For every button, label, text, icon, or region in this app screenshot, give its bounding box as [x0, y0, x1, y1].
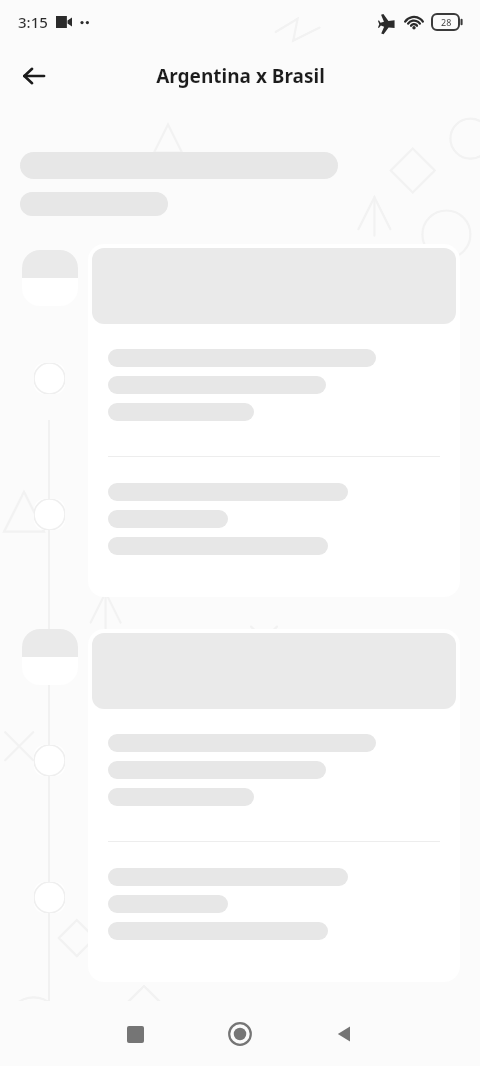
staticText: Argentina x Brasil: [156, 63, 325, 89]
button[interactable]: [88, 629, 460, 982]
button[interactable]: Timeline event: [22, 629, 78, 685]
button[interactable]: Home: [209, 1003, 271, 1065]
button[interactable]: Back: [10, 52, 58, 100]
button[interactable]: Recent apps: [104, 1003, 166, 1065]
staticText: 28: [441, 16, 452, 28]
button[interactable]: Timeline event: [22, 250, 78, 306]
button[interactable]: [88, 244, 460, 597]
staticText: 3:15: [18, 12, 48, 32]
button[interactable]: Back: [314, 1003, 376, 1065]
